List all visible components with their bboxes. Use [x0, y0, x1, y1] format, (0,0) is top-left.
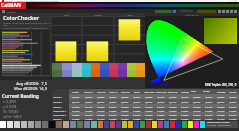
button[interactable] — [118, 63, 127, 77]
button[interactable]: Measured y — [52, 112, 239, 116]
staticText: 0,3172 — [181, 105, 189, 108]
button[interactable]: White — [69, 89, 82, 94]
button[interactable]: ColorChecker Classic — [206, 121, 238, 128]
button[interactable] — [82, 63, 91, 77]
button[interactable]: Orange — [215, 89, 227, 94]
staticText: 0,3152 — [157, 95, 165, 98]
button[interactable]: Measured colour — [204, 18, 237, 44]
button[interactable]: Purple — [227, 89, 239, 94]
button[interactable]: Light Skin — [155, 89, 167, 94]
staticText: Bluish Green — [203, 89, 215, 94]
button[interactable]: Blue Sky — [167, 89, 179, 94]
staticText: 0,3772 — [205, 105, 213, 108]
staticText: 0,3192 — [85, 113, 93, 116]
button[interactable]: Bluish Green — [203, 89, 215, 94]
staticText: 0,3842 — [193, 113, 201, 116]
staticText: 0,3112 — [169, 100, 177, 103]
staticText: 0,3082 — [229, 109, 237, 112]
button[interactable]: Gray 60 — [119, 89, 131, 94]
staticText: 0,3752 — [121, 117, 129, 120]
button[interactable]: Measured x — [52, 108, 239, 112]
button[interactable] — [62, 63, 72, 77]
button[interactable] — [72, 63, 82, 77]
button[interactable]: Gray 70 — [107, 89, 119, 94]
staticText: Target Y — [53, 105, 63, 108]
button[interactable] — [127, 63, 136, 77]
staticText: Blue — [115, 13, 145, 16]
staticText: Session — [7, 10, 16, 13]
staticText: 0,3662 — [229, 100, 237, 103]
button[interactable] — [109, 63, 118, 77]
button[interactable]: Gray 90 — [82, 89, 95, 94]
button[interactable]: Blue Flower — [191, 89, 203, 94]
button[interactable] — [52, 63, 62, 77]
staticText: Avg dE2000: 7,5 — [0, 81, 47, 86]
staticText: 0,3572 — [157, 105, 165, 108]
button[interactable]: Black — [131, 89, 143, 94]
staticText: 0,3622 — [121, 105, 129, 108]
button[interactable]: Target y — [52, 99, 239, 104]
staticText: 0,3932 — [145, 109, 153, 112]
button[interactable] — [91, 63, 100, 77]
button[interactable] — [136, 63, 145, 77]
button[interactable]: Target x — [52, 94, 239, 99]
button[interactable]: dE2000 — [52, 116, 239, 120]
staticText: 0,3402 — [229, 117, 237, 120]
button[interactable] — [100, 63, 109, 77]
staticText: Dark Skin — [144, 90, 155, 93]
staticText: 0,3552 — [193, 117, 201, 120]
button[interactable]: Target Y — [52, 104, 239, 108]
staticText: 0,3602 — [217, 95, 225, 98]
staticText: 0,3372 — [229, 105, 237, 108]
staticText: 0,3002 — [133, 117, 141, 120]
button[interactable]: Dark Skin — [143, 89, 155, 94]
staticText: Red — [52, 13, 81, 16]
button[interactable]: Gray 80 — [95, 89, 107, 94]
staticText: 0,3422 — [193, 105, 201, 108]
staticText: 0,3482 — [85, 109, 93, 112]
button[interactable]: Foliage — [179, 89, 191, 94]
staticText: 0,3022 — [97, 105, 105, 108]
